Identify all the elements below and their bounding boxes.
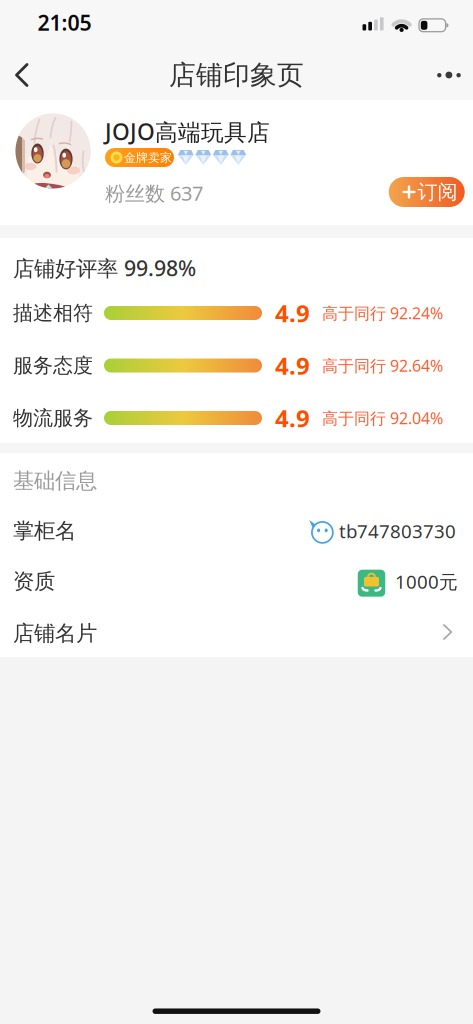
staticText: 1000元 — [395, 569, 458, 594]
staticText: tb747803730 — [339, 519, 456, 543]
staticText: 店铺印象页 — [169, 59, 304, 91]
staticText: 店铺好评率 99.98% — [13, 254, 196, 282]
staticText: 订阅 — [417, 180, 457, 204]
staticText: 4.9 — [275, 402, 310, 434]
staticText: 高于同行 92.24% — [322, 302, 443, 324]
staticText: 金牌卖家 — [124, 150, 172, 165]
staticText: 描述相符 — [13, 301, 93, 325]
staticText: 物流服务 — [13, 406, 93, 430]
staticText: 粉丝数 637 — [105, 180, 203, 206]
staticText: 高于同行 92.04% — [322, 407, 443, 429]
staticText: JOJO高端玩具店 — [105, 116, 270, 147]
staticText: 高于同行 92.64% — [322, 355, 443, 376]
staticText: 店铺名片 — [13, 620, 97, 647]
staticText: 4.9 — [275, 297, 310, 329]
staticText: 4.9 — [275, 350, 310, 381]
staticText: 资质 — [13, 568, 55, 595]
staticText: 基础信息 — [13, 468, 97, 494]
staticText: 掌柜名 — [13, 518, 76, 544]
staticText: 21:05 — [37, 8, 91, 37]
staticText: 服务态度 — [13, 353, 93, 378]
